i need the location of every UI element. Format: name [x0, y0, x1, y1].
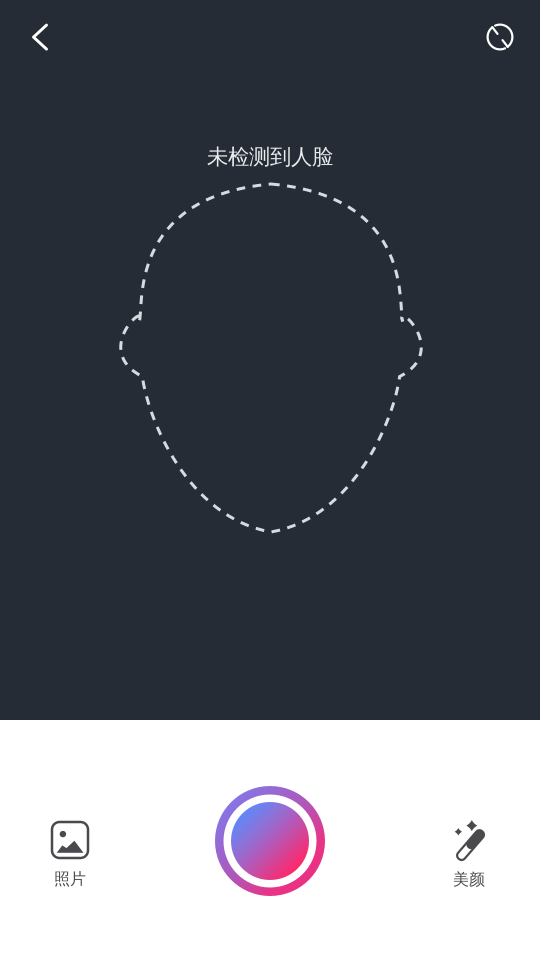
button[interactable]: Switch camera [476, 13, 524, 61]
button[interactable]: 照片 [25, 822, 115, 892]
staticText: 美颜 [453, 869, 485, 889]
staticText: 未检测到人脸 [207, 144, 333, 170]
button[interactable]: Back [16, 13, 64, 61]
button[interactable]: 美颜 [424, 820, 514, 890]
button[interactable]: Shutter [215, 786, 325, 896]
staticText: 照片 [54, 869, 86, 889]
